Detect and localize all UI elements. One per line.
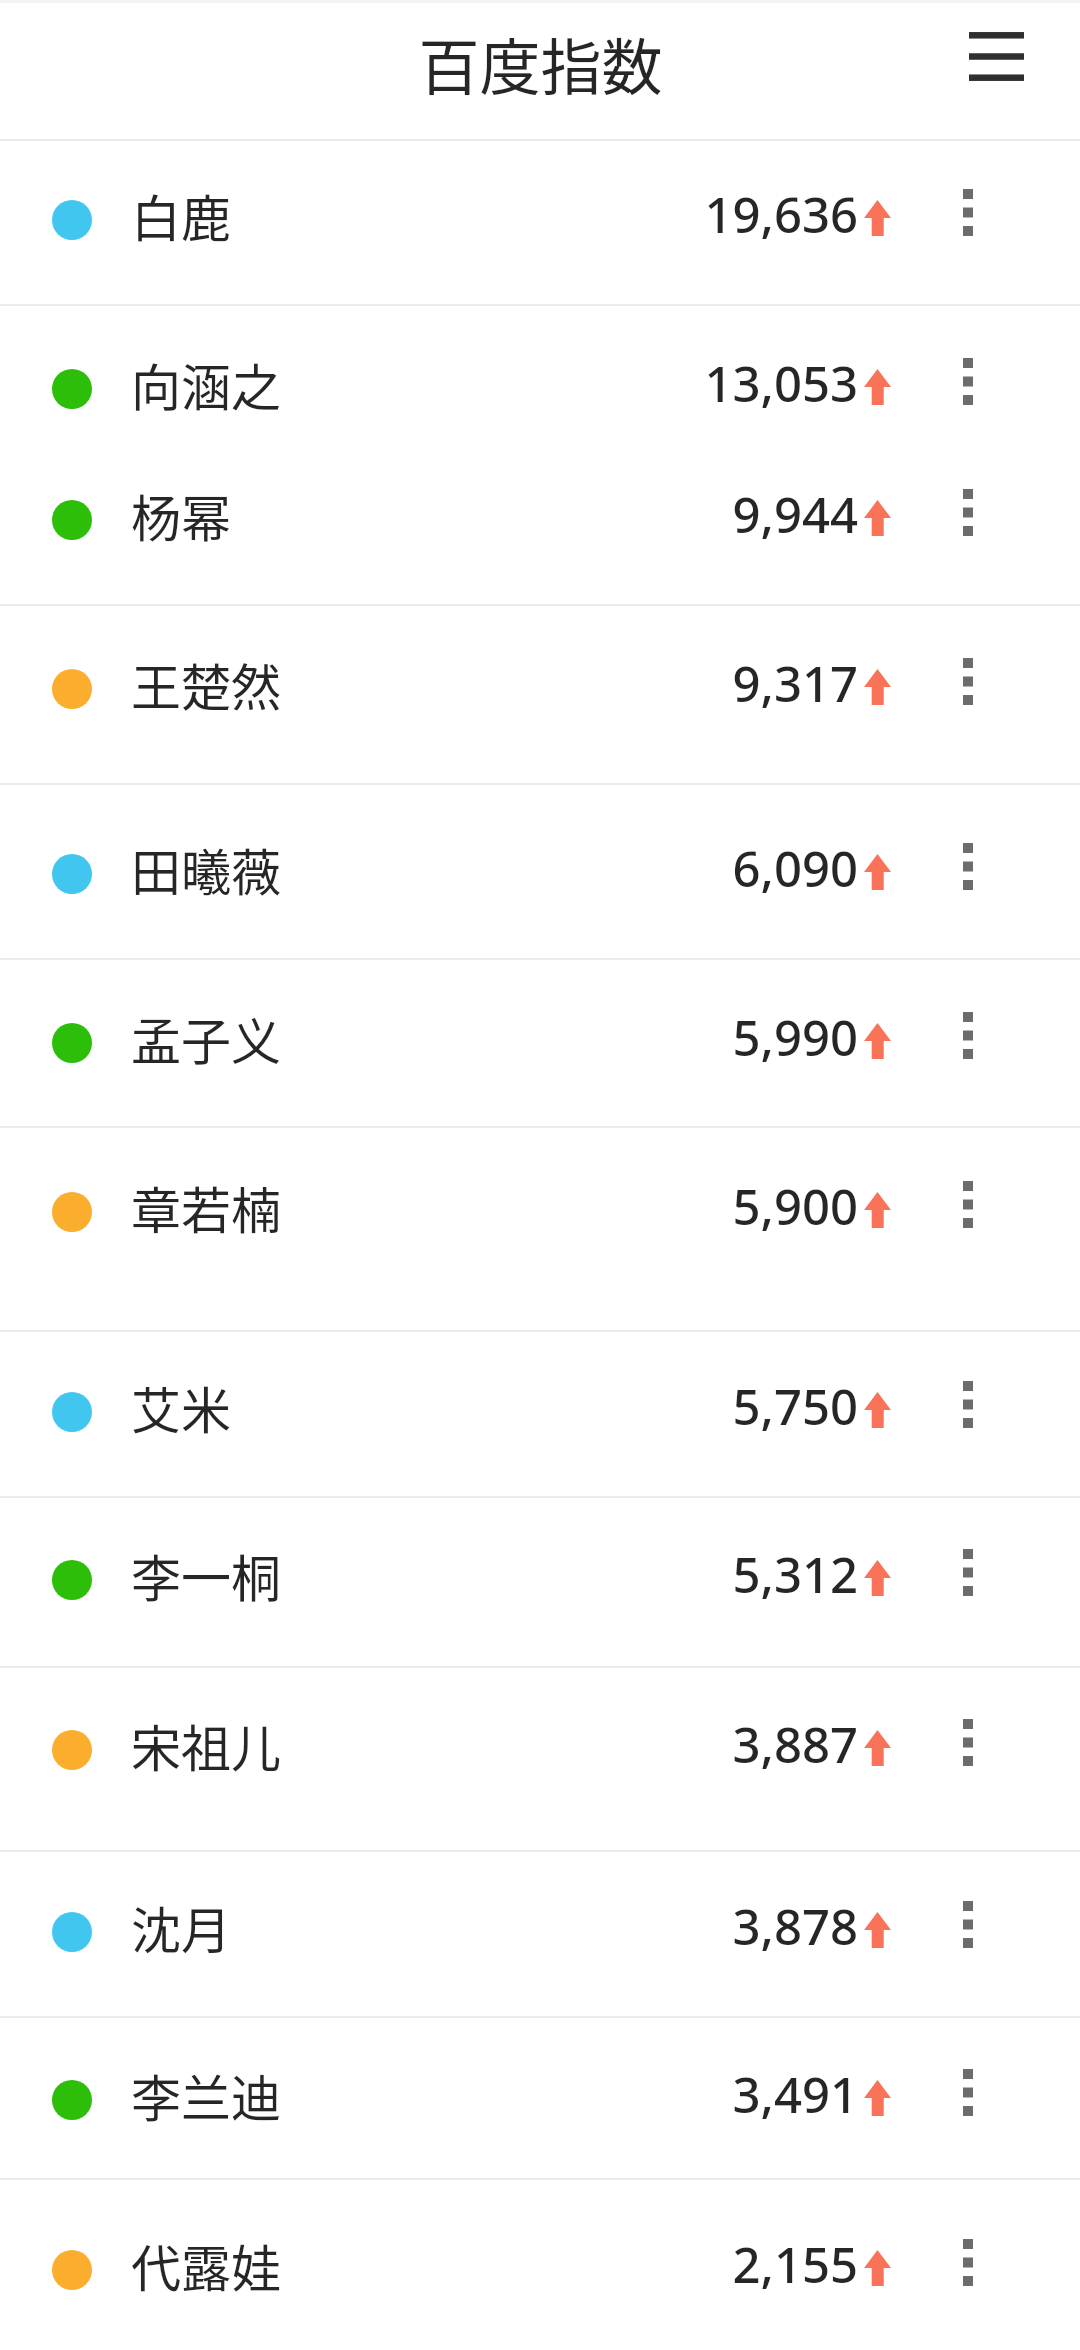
staticText: 19,636 [704,181,858,248]
button[interactable]: Menu [947,15,1045,99]
button[interactable]: More options [928,827,1008,907]
staticText: 5,990 [732,1004,858,1071]
staticText: 3,878 [732,1893,858,1960]
button[interactable]: 杨幂 [0,452,1080,604]
staticText: 章若楠 [131,1171,281,1239]
staticText: 9,944 [732,481,858,548]
button[interactable]: More options [928,1165,1008,1245]
button[interactable]: More options [928,342,1008,422]
staticText: 2,155 [732,2231,858,2298]
button[interactable]: More options [928,1703,1008,1783]
staticText: 孟子义 [131,1002,281,1070]
staticText: 3,887 [732,1711,858,1778]
staticText: 田曦薇 [131,833,281,901]
button[interactable]: 宋祖儿 [0,1666,1080,1850]
staticText: 5,900 [732,1173,858,1240]
button[interactable]: 李一桐 [0,1496,1080,1666]
button[interactable]: 向涵之 [0,304,1080,452]
button[interactable]: 艾米 [0,1330,1080,1496]
button[interactable]: More options [928,2223,1008,2303]
staticText: 5,750 [732,1373,858,1440]
staticText: 杨幂 [131,479,231,547]
staticText: 向涵之 [131,348,281,416]
button[interactable]: 李兰迪 [0,2016,1080,2178]
staticText: 3,491 [732,2061,858,2128]
button[interactable]: 沈月 [0,1850,1080,2016]
staticText: 百度指数 [418,19,663,107]
button[interactable]: 代露娃 [0,2178,1080,2350]
button[interactable]: More options [928,996,1008,1076]
staticText: 6,090 [732,835,858,902]
staticText: 13,053 [704,350,858,417]
button[interactable]: More options [928,2053,1008,2133]
staticText: 9,317 [732,650,858,717]
button[interactable]: More options [928,173,1008,253]
staticText: 宋祖儿 [131,1709,281,1777]
button[interactable]: More options [928,473,1008,553]
button[interactable]: More options [928,1533,1008,1613]
button[interactable]: More options [928,1885,1008,1965]
button[interactable]: 孟子义 [0,958,1080,1126]
button[interactable]: More options [928,1365,1008,1445]
button[interactable]: 章若楠 [0,1126,1080,1330]
staticText: 5,312 [732,1541,858,1608]
button[interactable]: 白鹿 [0,139,1080,304]
staticText: 王楚然 [131,648,281,716]
staticText: 艾米 [131,1371,231,1439]
staticText: 李兰迪 [131,2059,281,2127]
button[interactable]: More options [928,642,1008,722]
staticText: 沈月 [131,1891,231,1959]
staticText: 代露娃 [131,2229,281,2297]
staticText: 李一桐 [131,1539,281,1607]
button[interactable]: 田曦薇 [0,783,1080,958]
staticText: 白鹿 [131,179,231,247]
button[interactable]: 王楚然 [0,604,1080,783]
